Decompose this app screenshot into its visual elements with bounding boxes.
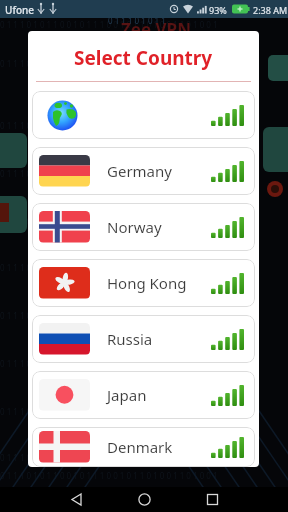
staticText: Germany <box>107 161 172 181</box>
staticText: Zee VPN <box>121 18 191 41</box>
staticText: 0 1 1 1 0 1 0 1 1 0 0 1 0 1 1 1 0 0 1 0 … <box>0 452 218 463</box>
button[interactable] <box>52 487 100 512</box>
staticText: 93% <box>209 4 227 16</box>
button[interactable]: Germany <box>32 147 255 195</box>
staticText: Norway <box>107 217 162 237</box>
staticText: 0 1 1 1 0 1 0 1 1 0 0 1 0 1 1 1 0 0 1 0 … <box>0 168 218 179</box>
staticText: Select Country <box>74 45 213 71</box>
button[interactable]: Russia <box>32 315 255 363</box>
staticText: Denmark <box>107 437 173 457</box>
staticText: 0 1 1 1 0 1 0 1 1 0 0 1 0 1 1 1 0 0 1 0 … <box>0 216 218 227</box>
staticText: 0 1 1 1 0 1 0 1 1 0 0 1 0 1 1 1 0 0 1 0 … <box>0 58 218 69</box>
button[interactable]: Norway <box>32 203 255 251</box>
staticText: 2:38 AM <box>253 4 288 16</box>
staticText: Hong Kong <box>107 273 187 293</box>
staticText: 0 1 1 1 0 1 0 1 1 <box>108 15 166 26</box>
button[interactable]: Hong Kong <box>32 259 255 307</box>
staticText: 0 1 1 1 0 1 0 1 1 0 0 1 0 1 1 1 0 0 1 0 … <box>0 406 218 417</box>
button[interactable]: Denmark <box>32 427 255 467</box>
staticText: 0 1 1 1 0 1 0 1 1 0 0 1 0 1 1 1 0 0 1 0 … <box>0 470 218 481</box>
button[interactable] <box>188 487 236 512</box>
button[interactable] <box>120 487 168 512</box>
staticText: Japan <box>107 385 147 405</box>
button[interactable] <box>32 91 255 139</box>
staticText: 0 1 1 1 0 1 0 1 1 0 0 1 0 1 1 1 0 0 1 0 … <box>0 120 218 131</box>
staticText: Ufone <box>5 3 35 17</box>
button[interactable]: Japan <box>32 371 255 419</box>
staticText: Russia <box>107 329 153 349</box>
staticText: 0 1 1 1 0 1 0 1 1 0 0 1 0 1 1 1 0 0 1 0 … <box>0 310 218 321</box>
staticText: 0 1 1 1 0 1 0 1 1 0 0 1 0 1 1 1 0 0 1 0 … <box>0 19 218 30</box>
staticText: 0 1 1 1 0 1 0 1 1 0 0 1 0 1 1 1 0 0 1 0 … <box>0 2 218 13</box>
staticText: 0 1 1 1 0 1 0 1 1 0 0 1 0 1 1 1 0 0 1 0 … <box>0 262 218 273</box>
staticText: 0 1 1 1 0 1 0 1 1 0 0 1 0 1 1 1 0 0 1 0 … <box>0 358 218 369</box>
